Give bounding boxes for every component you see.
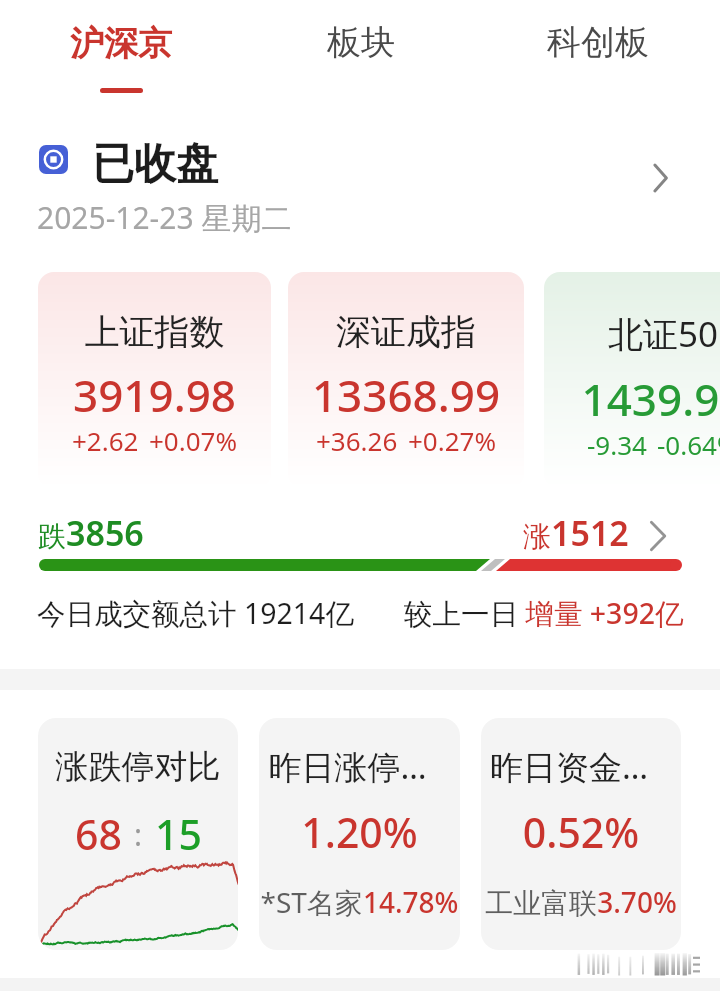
- staticText: 深证成指: [288, 310, 524, 354]
- staticText: -9.34: [587, 427, 647, 462]
- staticText: 较上一日 增量 +392亿: [404, 594, 684, 633]
- button[interactable]: 科创板: [521, 9, 675, 76]
- button[interactable]: 跌3856: [0, 505, 720, 585]
- staticText: +36.26: [316, 423, 398, 458]
- staticText: 上证指数: [38, 310, 271, 354]
- staticText: 昨日资金…: [481, 744, 669, 789]
- staticText: +0.07%: [149, 423, 238, 458]
- staticText: 沪深京: [70, 22, 172, 65]
- staticText: +2.62: [72, 423, 139, 458]
- staticText: 涨跌停对比: [38, 746, 238, 788]
- staticText: -0.64%: [657, 427, 720, 462]
- button[interactable]: 沪深京: [44, 10, 198, 105]
- staticText: 工业富联3.70%: [481, 883, 681, 921]
- button[interactable]: 北证50: [544, 272, 720, 488]
- staticText: 今日成交额总计 19214亿: [37, 594, 354, 633]
- staticText: 1439.94: [544, 369, 720, 429]
- staticText: 跌3856: [38, 510, 144, 556]
- staticText: 板块: [327, 21, 395, 64]
- staticText: 13368.99: [288, 365, 524, 425]
- staticText: 昨日涨停…: [259, 744, 448, 789]
- button[interactable]: 板块: [301, 9, 421, 76]
- staticText: *ST名家14.78%: [259, 883, 460, 921]
- staticText: 已收盘: [92, 138, 218, 191]
- button[interactable]: 上证指数: [38, 272, 271, 488]
- button[interactable]: 昨日资金…: [481, 718, 681, 950]
- staticText: 3919.98: [38, 365, 271, 425]
- staticText: 北证50: [544, 310, 720, 358]
- staticText: 2025-12-23 星期二: [37, 197, 292, 238]
- staticText: 68: [75, 806, 122, 862]
- staticText: 0.52%: [481, 804, 681, 860]
- button[interactable]: 涨跌停对比: [38, 718, 238, 950]
- staticText: 15: [155, 806, 202, 862]
- other: More: [652, 164, 670, 192]
- staticText: :: [134, 814, 143, 855]
- staticText: 1.20%: [259, 804, 460, 860]
- button[interactable]: 昨日涨停…: [259, 718, 460, 950]
- staticText: 科创板: [547, 21, 649, 64]
- staticText: +0.27%: [408, 423, 497, 458]
- other: Detail: [648, 521, 669, 551]
- button[interactable]: 深证成指: [288, 272, 524, 488]
- button[interactable]: 已收盘: [0, 130, 720, 240]
- staticText: 涨1512: [523, 510, 629, 556]
